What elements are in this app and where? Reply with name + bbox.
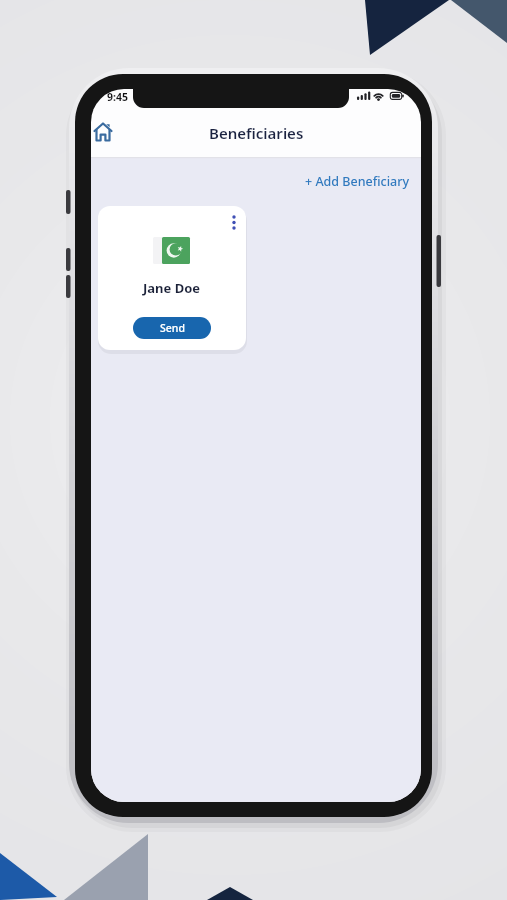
staticText: + Add Beneficiary [305,173,410,190]
button[interactable] [226,210,244,236]
staticText: Send [160,321,185,335]
button[interactable] [92,119,114,144]
button[interactable]: Jane Doe [98,206,246,350]
staticText: Beneficiaries [209,123,304,143]
button[interactable]: Send [133,317,211,339]
button[interactable]: + Add Beneficiary [305,173,410,190]
staticText: Jane Doe [143,279,201,297]
staticText: 9:45 [107,90,128,104]
